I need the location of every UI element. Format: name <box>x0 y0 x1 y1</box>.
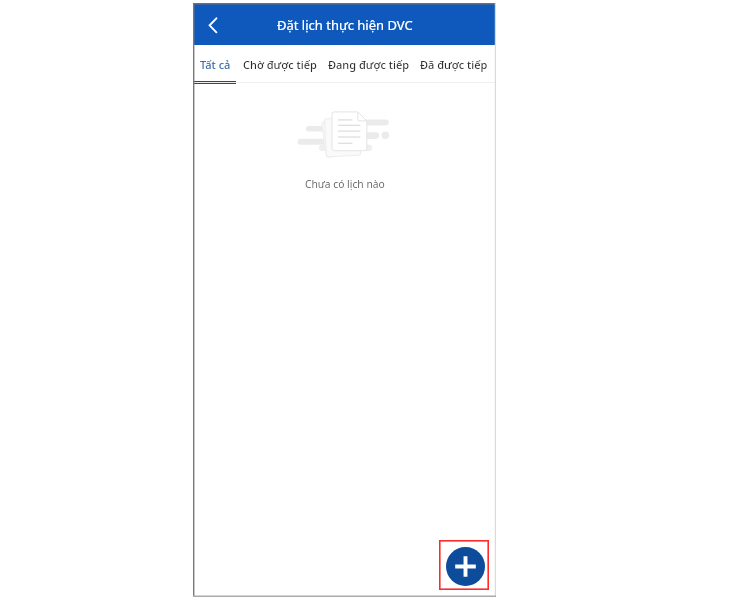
staticText: Chưa có lịch nào <box>305 177 385 191</box>
staticText: Đang được tiếp <box>328 57 410 72</box>
button[interactable]: Chờ được tiếp <box>237 50 323 78</box>
button[interactable]: Tất cả <box>194 50 236 78</box>
button[interactable]: Add schedule <box>439 540 489 590</box>
staticText: Chờ được tiếp <box>243 57 317 72</box>
button[interactable]: Đã được tiếp <box>411 50 496 78</box>
staticText: Đã được tiếp <box>420 57 488 72</box>
button[interactable]: Đang được tiếp <box>327 50 411 78</box>
button[interactable]: Back <box>197 8 229 40</box>
staticText: Đặt lịch thực hiện DVC <box>277 16 413 34</box>
staticText: Tất cả <box>200 57 231 72</box>
